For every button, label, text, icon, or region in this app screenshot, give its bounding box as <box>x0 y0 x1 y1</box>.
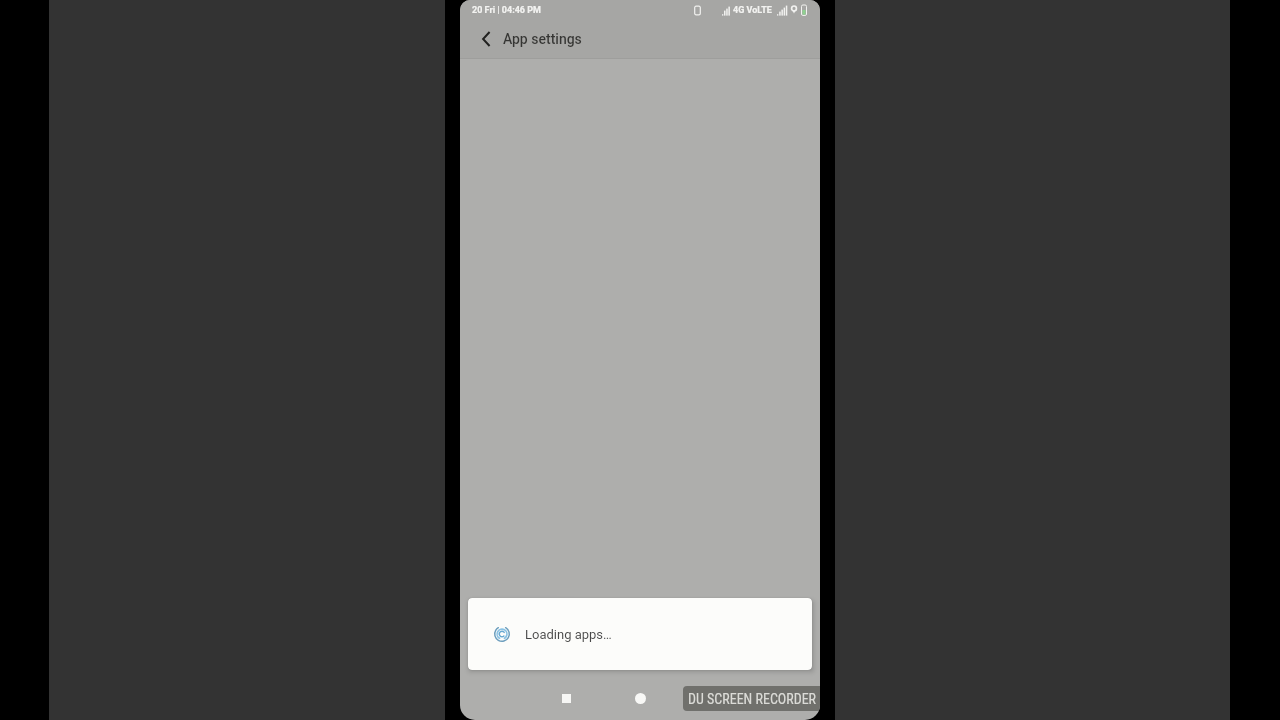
staticText: 4G VoLTE <box>733 5 772 16</box>
staticText: Loading apps… <box>525 627 612 642</box>
staticText: 20 Fri | 04:46 PM <box>472 5 541 16</box>
button[interactable]: DU SCREEN RECORDER <box>683 686 820 711</box>
staticText: App settings <box>503 31 582 47</box>
button[interactable] <box>460 20 490 58</box>
button[interactable] <box>556 688 576 708</box>
button[interactable] <box>630 688 650 708</box>
staticText: DU SCREEN RECORDER <box>688 691 817 707</box>
